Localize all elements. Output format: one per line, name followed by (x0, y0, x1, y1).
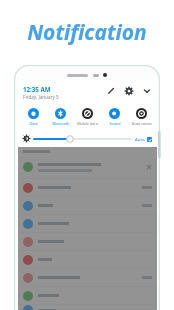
button[interactable]: Collapse (141, 85, 152, 96)
button[interactable]: Brightness slider (34, 134, 131, 144)
button[interactable]: Settings (123, 85, 134, 96)
staticText: Data (29, 121, 38, 126)
staticText: Auto-rotate (132, 121, 152, 126)
staticText: Friday, January 5 (23, 94, 59, 100)
button[interactable]: Auto (135, 136, 152, 142)
button[interactable]: Mobile data (74, 108, 101, 126)
staticText: Sound (109, 121, 121, 126)
staticText: Notification (27, 18, 147, 47)
staticText: Mobile data (77, 121, 98, 126)
button[interactable]: Sound (101, 108, 128, 126)
staticText: Auto (135, 136, 145, 142)
button[interactable]: Dismiss (18, 156, 157, 178)
button[interactable] (18, 269, 157, 286)
button[interactable] (18, 179, 157, 196)
staticText: Bluetooth (52, 121, 70, 126)
button[interactable] (18, 215, 157, 232)
button[interactable]: Edit (105, 85, 116, 96)
button[interactable] (18, 197, 157, 214)
staticText: 12:35 AM (23, 85, 51, 93)
other: Brightness (23, 135, 30, 142)
button[interactable]: Data (20, 108, 47, 126)
button[interactable]: Dismiss (146, 164, 152, 170)
button[interactable] (18, 287, 157, 304)
button[interactable] (18, 305, 157, 310)
button[interactable]: Bluetooth (47, 108, 74, 126)
button[interactable] (18, 251, 157, 268)
button[interactable] (18, 233, 157, 250)
button[interactable]: Auto-rotate (128, 108, 155, 126)
